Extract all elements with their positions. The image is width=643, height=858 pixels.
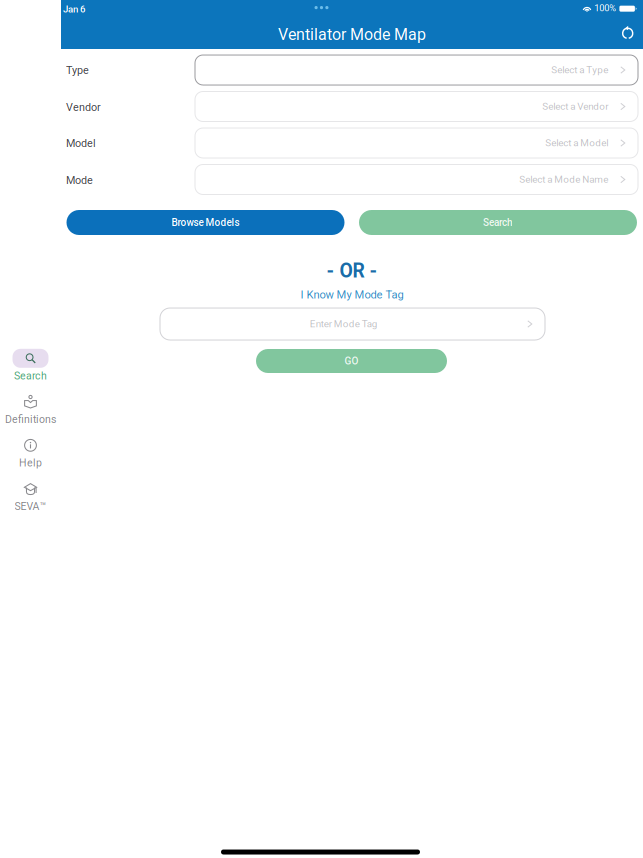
- button[interactable]: I Know My Mode Tag: [295, 286, 408, 303]
- staticText: Jan 6: [63, 3, 85, 15]
- button[interactable]: Select a Model: [195, 128, 638, 158]
- staticText: Definitions: [5, 413, 56, 426]
- button[interactable]: Browse Models: [66, 210, 344, 235]
- staticText: Model: [66, 137, 96, 150]
- staticText: Search: [483, 217, 513, 228]
- staticText: - OR -: [326, 259, 377, 282]
- button[interactable]: Help: [0, 436, 61, 469]
- staticText: Select a Type: [551, 64, 608, 76]
- staticText: Browse Models: [171, 217, 239, 228]
- button[interactable]: Reset: [614, 16, 642, 49]
- button[interactable]: Select a Mode Name: [195, 164, 638, 194]
- button[interactable]: Search: [0, 349, 61, 382]
- staticText: Search: [14, 370, 47, 382]
- staticText: Help: [19, 457, 42, 469]
- staticText: Type: [66, 64, 89, 77]
- staticText: Select a Vendor: [542, 101, 608, 112]
- staticText: SEVA™: [14, 500, 46, 513]
- staticText: Mode: [66, 174, 93, 187]
- button[interactable]: Definitions: [0, 392, 61, 425]
- button[interactable]: Search: [359, 210, 637, 235]
- staticText: Enter Mode Tag: [310, 318, 378, 330]
- button[interactable]: Select a Type: [195, 55, 638, 85]
- staticText: 100%: [594, 3, 616, 13]
- button[interactable]: Enter Mode Tag: [160, 308, 545, 340]
- staticText: I Know My Mode Tag: [300, 288, 403, 301]
- button[interactable]: Select a Vendor: [195, 91, 638, 121]
- staticText: Select a Model: [545, 137, 608, 149]
- staticText: Ventilator Mode Map: [278, 25, 426, 44]
- staticText: Select a Mode Name: [519, 174, 608, 185]
- staticText: Vendor: [66, 101, 101, 114]
- staticText: GO: [344, 355, 358, 367]
- button[interactable]: SEVA™: [0, 479, 61, 512]
- button[interactable]: GO: [256, 349, 447, 373]
